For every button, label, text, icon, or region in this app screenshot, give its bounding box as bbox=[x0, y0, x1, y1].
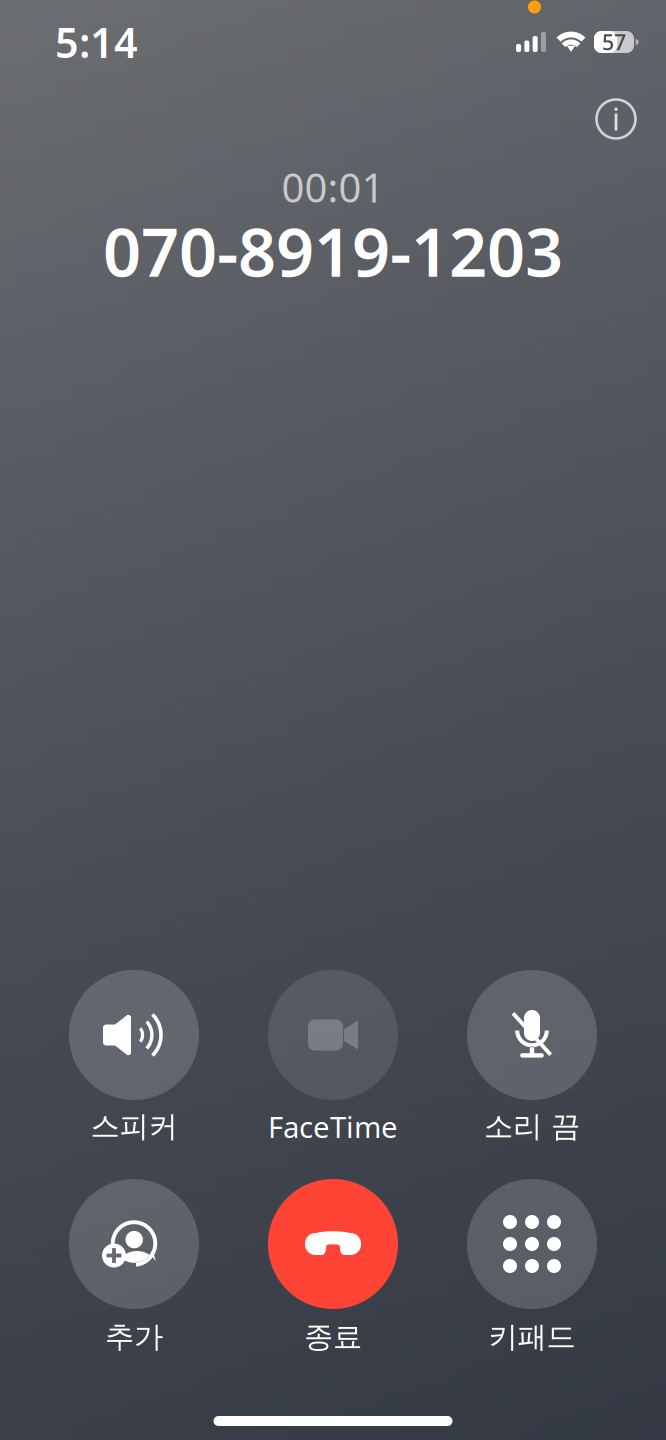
button[interactable]: 소리 끔 bbox=[0, 0, 666, 1440]
staticText: i bbox=[612, 98, 620, 139]
button[interactable]: Call info bbox=[0, 0, 666, 1440]
staticText: 종료 bbox=[304, 1319, 362, 1355]
staticText: 57 bbox=[602, 28, 626, 56]
staticText: FaceTime bbox=[268, 1107, 398, 1146]
staticText: 5:14 bbox=[55, 15, 138, 69]
staticText: 키패드 bbox=[488, 1319, 575, 1355]
staticText: 추가 bbox=[105, 1319, 163, 1355]
staticText: 스피커 bbox=[90, 1108, 177, 1144]
button[interactable]: 키패드 bbox=[0, 0, 666, 1440]
button[interactable]: 스피커 bbox=[0, 0, 666, 1440]
staticText: 070-8919-1203 bbox=[103, 207, 563, 295]
staticText: 소리 끔 bbox=[484, 1108, 580, 1144]
button[interactable]: 추가 bbox=[0, 0, 666, 1440]
button[interactable]: FaceTime bbox=[0, 0, 666, 1440]
button[interactable]: 종료 bbox=[0, 0, 666, 1440]
staticText: 00:01 bbox=[281, 160, 384, 213]
